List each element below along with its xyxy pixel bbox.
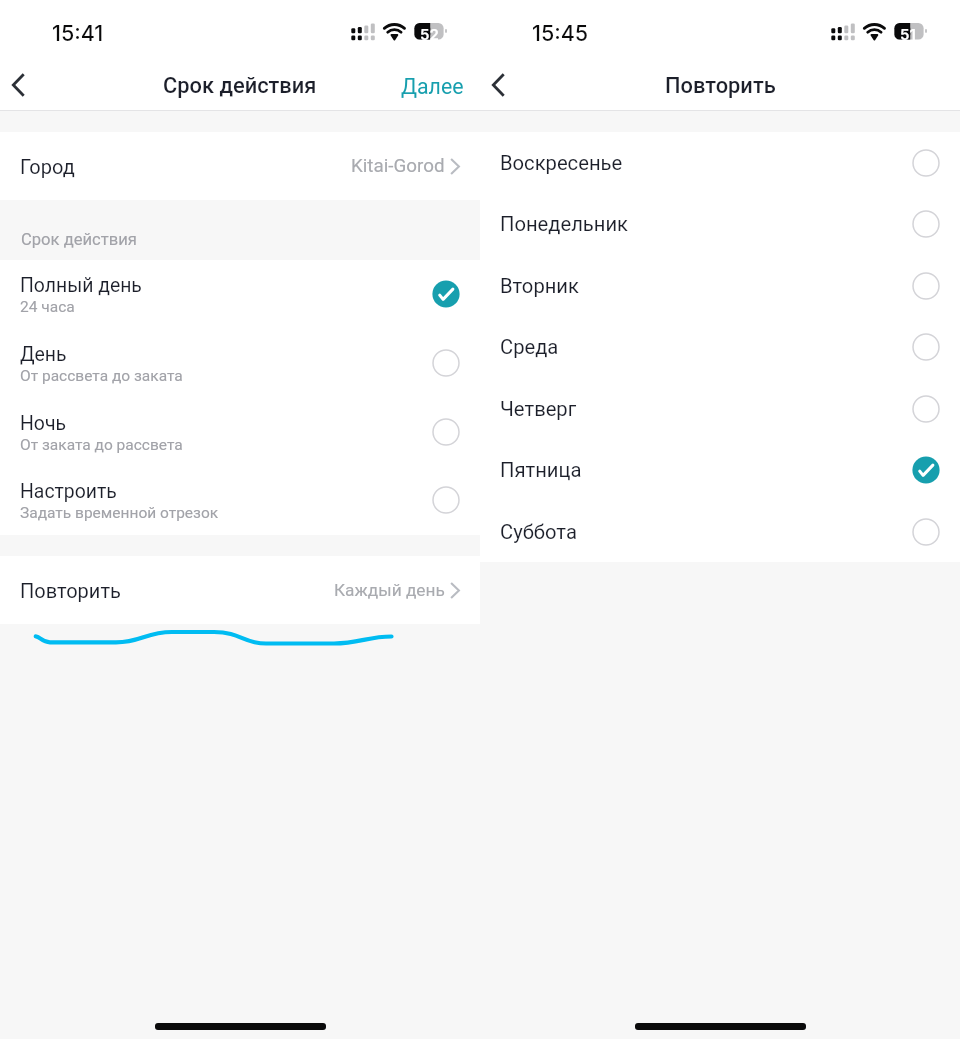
button[interactable]: Город: [0, 132, 480, 200]
staticText: Воскресенье: [500, 151, 623, 175]
button[interactable]: Полный день: [0, 260, 480, 329]
button[interactable]: День: [0, 329, 480, 398]
button[interactable]: Повторить: [0, 556, 480, 624]
staticText: 24 часа: [20, 298, 75, 316]
button[interactable]: Четверг: [480, 378, 960, 439]
staticText: Настроить: [20, 480, 117, 503]
staticText: Повторить: [20, 579, 121, 602]
staticText: От рассвета до заката: [20, 367, 183, 385]
staticText: Срок действия: [21, 230, 137, 249]
staticText: 51: [900, 25, 916, 43]
button[interactable]: Ночь: [0, 398, 480, 467]
staticText: Суббота: [500, 520, 577, 544]
staticText: Четверг: [500, 397, 577, 421]
button[interactable]: Воскресенье: [480, 132, 960, 193]
staticText: Понедельник: [500, 212, 628, 236]
staticText: Kitai-Gorod: [351, 155, 445, 177]
staticText: Ночь: [20, 412, 66, 435]
staticText: Вторник: [500, 274, 579, 298]
button[interactable]: Понедельник: [480, 193, 960, 254]
button[interactable]: Настроить: [0, 466, 480, 535]
staticText: Повторить: [665, 73, 776, 99]
staticText: Город: [20, 155, 75, 178]
staticText: Задать временной отрезок: [20, 504, 219, 522]
button[interactable]: Back: [476, 63, 520, 107]
staticText: Каждый день: [334, 580, 445, 600]
button[interactable]: Далее: [385, 64, 480, 109]
button[interactable]: Среда: [480, 316, 960, 377]
staticText: От заката до рассвета: [20, 436, 183, 454]
staticText: 15:41: [52, 20, 104, 46]
staticText: День: [20, 343, 67, 366]
button[interactable]: Пятница: [480, 439, 960, 500]
staticText: Среда: [500, 335, 559, 359]
staticText: Далее: [401, 74, 464, 99]
staticText: Полный день: [20, 274, 142, 297]
button[interactable]: Суббота: [480, 501, 960, 562]
button[interactable]: Back: [0, 63, 40, 107]
staticText: Срок действия: [163, 73, 317, 99]
staticText: 52: [420, 25, 439, 43]
staticText: Пятница: [500, 458, 582, 482]
button[interactable]: Вторник: [480, 255, 960, 316]
staticText: 15:45: [532, 20, 589, 46]
